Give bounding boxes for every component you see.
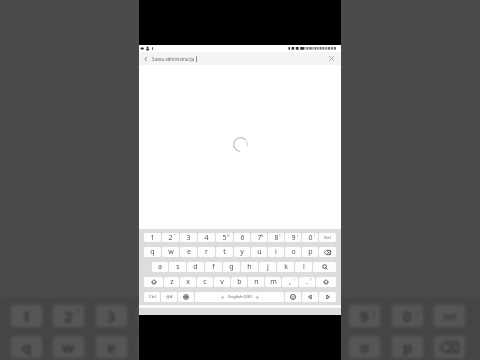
button[interactable]: z (164, 277, 179, 287)
staticText: t (223, 247, 226, 257)
button[interactable]: Clear (321, 52, 341, 65)
button[interactable]: x (180, 277, 196, 287)
button[interactable]: 4 (198, 233, 215, 242)
staticText: * (279, 234, 281, 238)
staticText: 2 (64, 306, 73, 326)
staticText: y (240, 247, 244, 257)
staticText: 7 (257, 233, 262, 242)
button[interactable]: Shift (144, 277, 163, 287)
button[interactable]: Backspace (319, 247, 336, 257)
staticText: v (220, 277, 224, 287)
button[interactable]: 8 (268, 233, 284, 242)
button[interactable]: h (241, 262, 258, 272)
staticText: c (203, 277, 207, 287)
staticText: 5 (191, 306, 200, 326)
button[interactable]: 1 (144, 233, 161, 242)
button[interactable]: Back (139, 52, 152, 65)
staticText: 2 (168, 233, 173, 242)
button[interactable]: Del (319, 233, 336, 242)
button[interactable]: u (251, 247, 267, 257)
button[interactable]: f (205, 262, 222, 272)
button[interactable]: , (282, 277, 298, 287)
button[interactable]: o (285, 247, 301, 257)
button[interactable]: 9 (285, 233, 301, 242)
staticText: , (289, 277, 291, 287)
staticText: q (150, 247, 155, 257)
button[interactable]: 2 (162, 233, 179, 242)
button[interactable]: a (152, 262, 168, 272)
staticText: b (237, 277, 242, 287)
button[interactable]: Shift (316, 277, 336, 287)
staticText: w (168, 247, 174, 257)
button[interactable]: w (162, 247, 179, 257)
staticText: 3 (107, 306, 116, 326)
button[interactable]: r (198, 247, 215, 257)
button[interactable]: Right (319, 292, 336, 302)
staticText: g (229, 262, 234, 272)
staticText: p (403, 337, 413, 357)
staticText: l (303, 262, 305, 272)
button[interactable]: . (299, 277, 315, 287)
button[interactable]: n (248, 277, 264, 287)
staticText: & (286, 307, 292, 318)
staticText: · (193, 234, 194, 238)
staticText: p (308, 247, 313, 257)
button[interactable]: g (223, 262, 240, 272)
staticText: & (261, 234, 264, 238)
staticText: 0 (403, 306, 412, 326)
staticText: % (200, 307, 207, 318)
staticText: o (291, 247, 296, 257)
staticText: * (329, 307, 334, 318)
staticText: English (UK) (228, 294, 252, 300)
button[interactable]: i (268, 247, 284, 257)
staticText: 7 (276, 306, 285, 326)
button[interactable]: b (231, 277, 247, 287)
button[interactable]: 0 (302, 233, 318, 242)
button[interactable]: English (UK) (195, 292, 284, 302)
staticText: o (360, 337, 370, 357)
button[interactable]: k (277, 262, 294, 272)
button[interactable]: s (169, 262, 186, 272)
button[interactable]: 3 (180, 233, 197, 242)
staticText: @# (166, 294, 173, 300)
button[interactable]: d (187, 262, 204, 272)
button[interactable]: Ctrl (144, 292, 160, 302)
staticText: x (186, 277, 190, 287)
button[interactable]: Language (178, 292, 194, 302)
button[interactable]: @# (161, 292, 177, 302)
button[interactable]: Left (302, 292, 318, 302)
staticText: a (158, 262, 162, 272)
button[interactable]: Search (313, 262, 336, 272)
button[interactable]: l (295, 262, 312, 272)
staticText: i (275, 247, 277, 257)
button[interactable]: p (302, 247, 318, 257)
staticText: 1 (150, 233, 155, 242)
staticText: ⌫ (439, 339, 461, 356)
staticText: e (187, 247, 191, 257)
staticText: d (193, 262, 198, 272)
button[interactable]: Emoji (285, 292, 301, 302)
button[interactable]: 6 (234, 233, 250, 242)
button[interactable]: e (180, 247, 197, 257)
staticText: ) (314, 234, 315, 238)
staticText: w (62, 337, 75, 357)
button[interactable]: j (259, 262, 276, 272)
staticText: 5 (222, 233, 227, 242)
staticText: 0 (308, 233, 313, 242)
button[interactable]: y (234, 247, 250, 257)
staticText: 6 (240, 233, 245, 242)
staticText: ! (294, 278, 295, 282)
staticText: u (257, 247, 262, 257)
button[interactable]: c (197, 277, 213, 287)
button[interactable]: m (265, 277, 281, 287)
button[interactable]: 7 (251, 233, 267, 242)
button[interactable]: q (144, 247, 161, 257)
staticText: 8 (318, 306, 327, 326)
button[interactable]: 5 (216, 233, 233, 242)
button[interactable]: v (214, 277, 230, 287)
button[interactable]: t (216, 247, 233, 257)
